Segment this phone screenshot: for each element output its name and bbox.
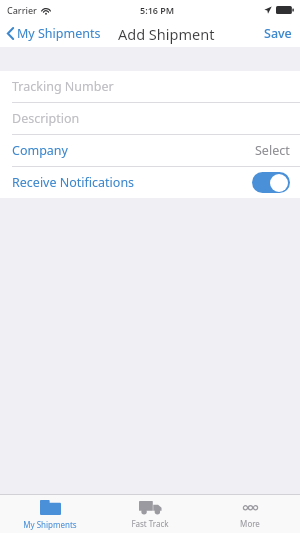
staticText: 5:16 PM — [140, 4, 175, 16]
button[interactable]: More — [200, 495, 300, 533]
staticText: Add Shipment — [118, 24, 215, 44]
staticText: Description — [12, 110, 80, 127]
staticText: Fast Track — [131, 518, 169, 529]
button[interactable]: Save — [256, 20, 300, 47]
button[interactable]: My Shipments — [0, 20, 105, 47]
button[interactable]: Receive Notifications toggle — [252, 172, 290, 193]
staticText: Save — [264, 25, 292, 42]
button[interactable]: My Shipments — [0, 495, 100, 533]
staticText: Select — [255, 142, 290, 159]
button[interactable]: Tracking Number — [0, 71, 300, 102]
button[interactable]: Company — [0, 135, 300, 166]
button[interactable]: Fast Track — [100, 495, 200, 533]
staticText: More — [240, 518, 260, 529]
staticText: Receive Notifications — [12, 174, 135, 191]
button[interactable]: Receive Notifications — [0, 167, 300, 198]
staticText: Company — [12, 142, 68, 159]
staticText: My Shipments — [23, 519, 77, 530]
staticText: Carrier — [7, 4, 37, 16]
staticText: Tracking Number — [12, 78, 114, 95]
button[interactable]: Description — [0, 103, 300, 134]
staticText: My Shipments — [17, 25, 101, 42]
